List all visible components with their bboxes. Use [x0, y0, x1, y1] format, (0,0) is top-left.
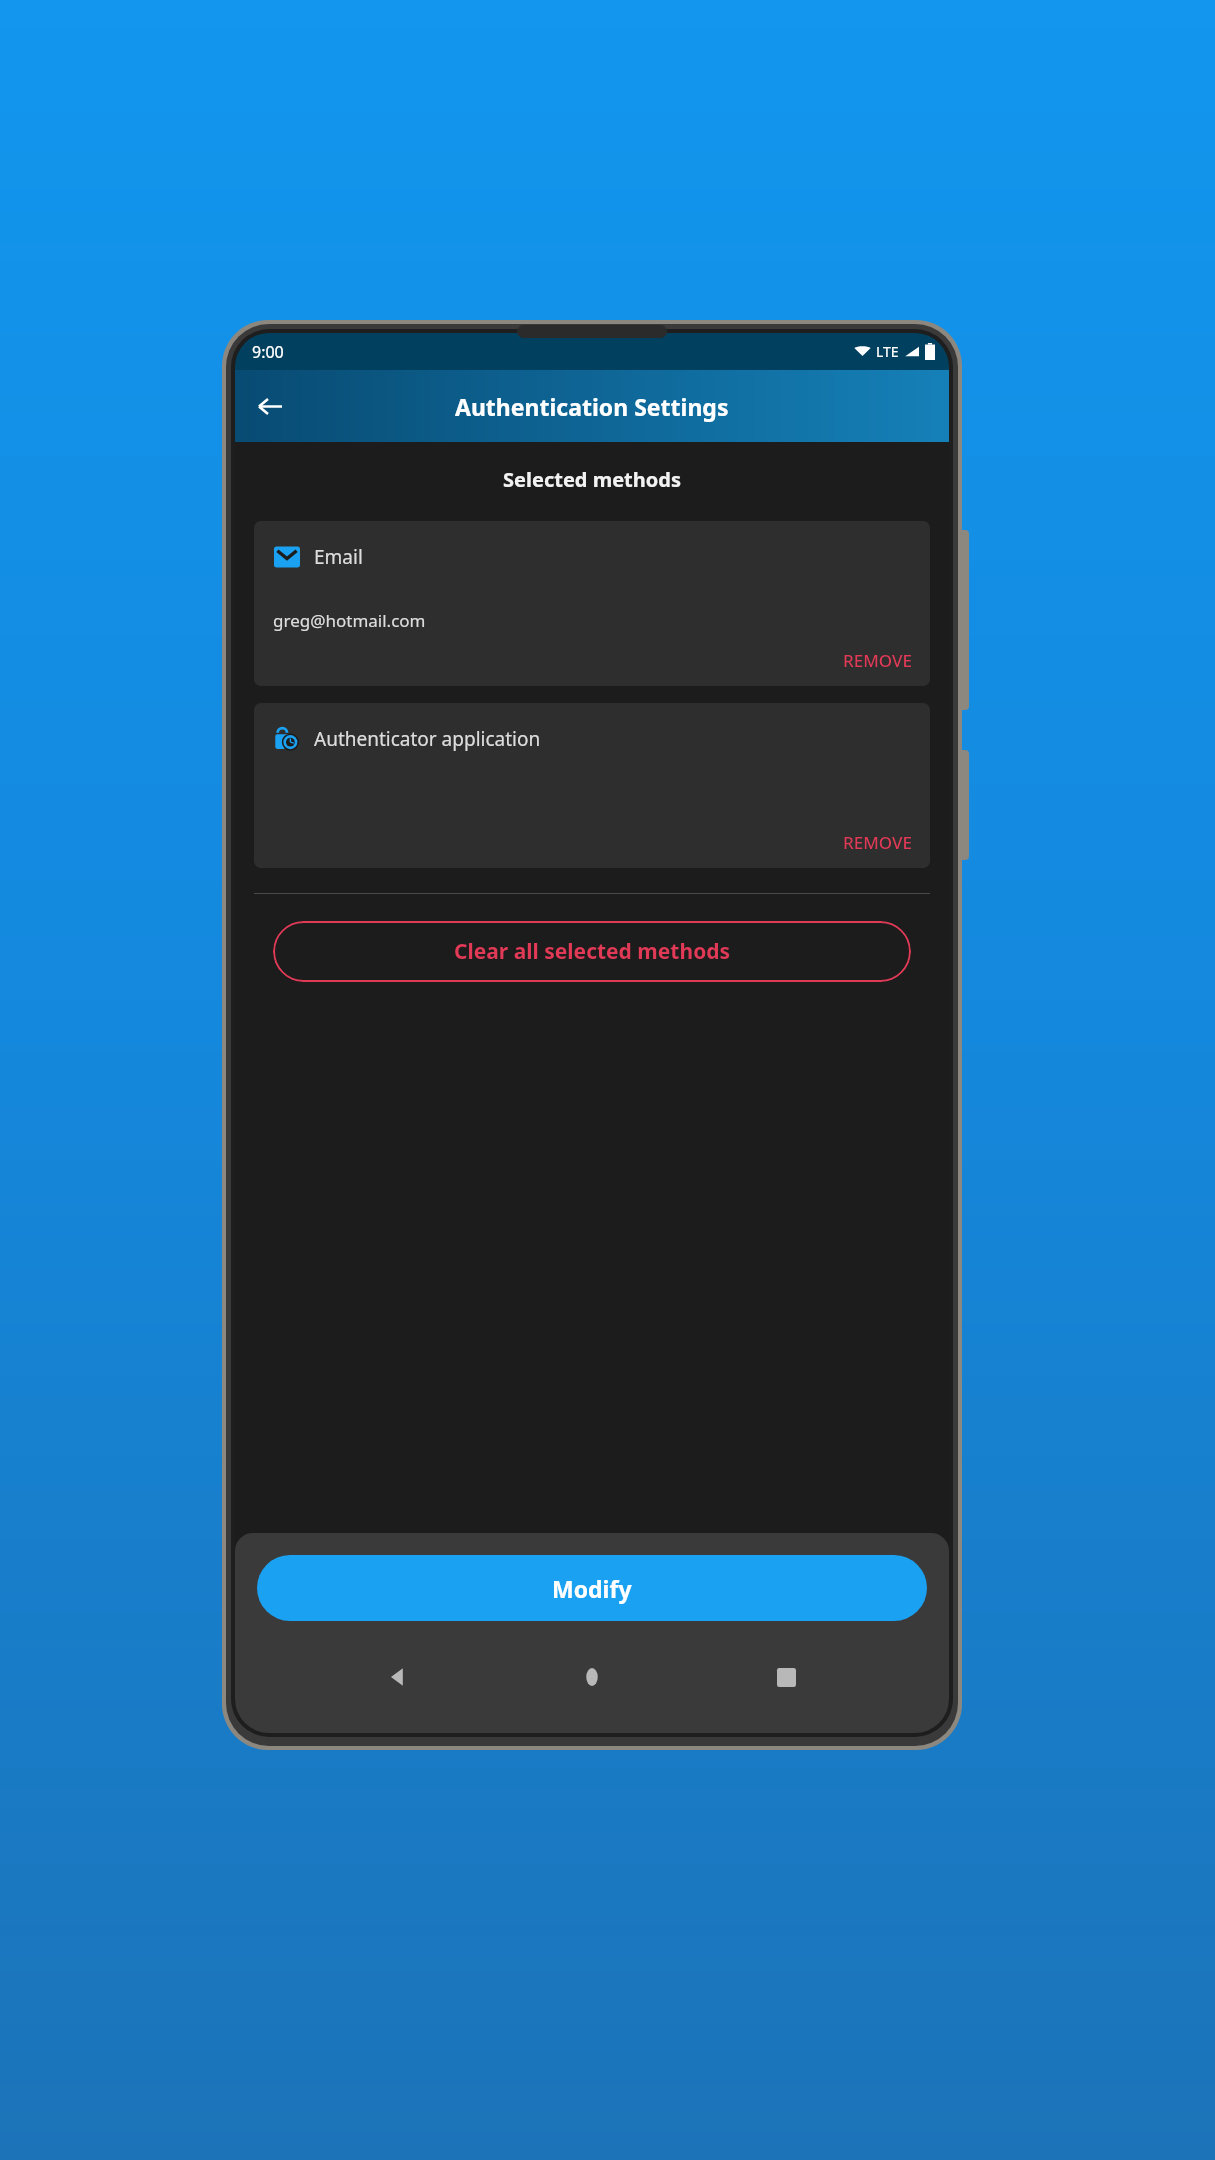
staticText: Authenticator application: [314, 726, 541, 752]
staticText: Clear all selected methods: [454, 937, 731, 966]
staticText: REMOVE: [843, 831, 912, 854]
button[interactable]: Authenticator application: [254, 703, 930, 868]
staticText: Email: [314, 544, 363, 570]
button[interactable]: REMOVE: [831, 641, 924, 680]
button[interactable]: Clear all selected methods: [273, 921, 911, 982]
staticText: Selected methods: [235, 466, 949, 493]
staticText: 9:00: [252, 341, 284, 363]
button[interactable]: Back: [243, 380, 295, 432]
button[interactable]: REMOVE: [831, 823, 924, 862]
button[interactable]: Email: [254, 521, 930, 686]
button[interactable]: Home: [561, 1646, 623, 1708]
staticText: Authentication Settings: [455, 391, 729, 422]
button[interactable]: Modify: [257, 1555, 927, 1621]
staticText: LTE: [876, 342, 899, 361]
button[interactable]: Recent apps: [755, 1646, 817, 1708]
staticText: REMOVE: [843, 649, 912, 672]
staticText: greg@hotmail.com: [273, 609, 426, 632]
staticText: Modify: [552, 1573, 632, 1604]
button[interactable]: Back: [367, 1646, 429, 1708]
